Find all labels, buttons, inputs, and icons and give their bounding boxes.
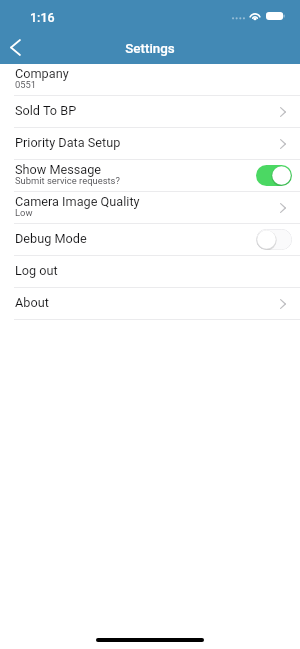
button[interactable]: Priority Data Setup xyxy=(0,128,300,159)
staticText: 0551 xyxy=(15,79,37,90)
button[interactable]: Debug Mode xyxy=(0,224,300,255)
button[interactable]: Show Message xyxy=(0,160,300,191)
staticText: Company xyxy=(15,66,69,81)
button[interactable]: About xyxy=(0,288,300,319)
staticText: Priority Data Setup xyxy=(15,135,121,150)
staticText: Low xyxy=(15,207,33,218)
button[interactable]: Sold To BP xyxy=(0,96,300,127)
button[interactable]: Camera Image Quality xyxy=(0,192,300,223)
button[interactable]: Switch off xyxy=(256,229,292,250)
staticText: Submit service requests? xyxy=(15,175,120,186)
button[interactable]: Switch on xyxy=(256,165,292,186)
staticText: 1:16 xyxy=(30,10,55,25)
staticText: About xyxy=(15,295,49,310)
button[interactable]: Company xyxy=(0,64,300,95)
button[interactable]: Log out xyxy=(0,256,300,287)
staticText: Settings xyxy=(125,41,175,57)
staticText: Show Message xyxy=(15,162,102,177)
button[interactable]: Back xyxy=(0,30,30,64)
staticText: Sold To BP xyxy=(15,103,77,118)
staticText: Camera Image Quality xyxy=(15,194,140,209)
staticText: Debug Mode xyxy=(15,231,87,246)
staticText: Log out xyxy=(15,263,58,278)
